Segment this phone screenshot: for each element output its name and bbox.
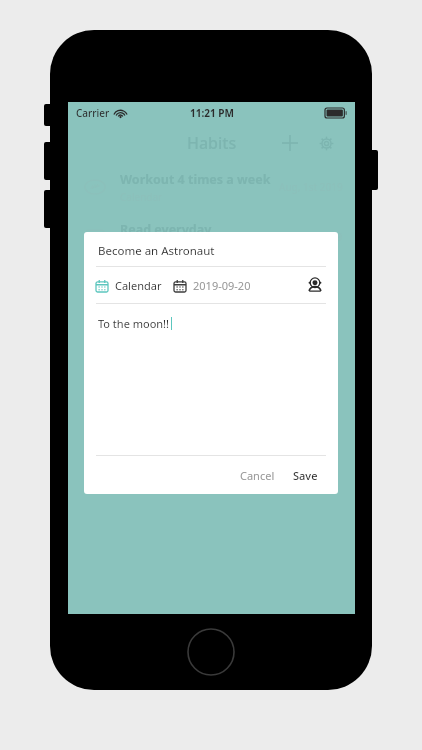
button[interactable]: Read everyday: [68, 212, 355, 262]
staticText: Sep, 12th 2019: [273, 230, 343, 244]
button[interactable]: 2019-09-20: [174, 278, 251, 293]
staticText: Read everyday: [120, 221, 212, 238]
staticText: Become an Astronaut: [98, 243, 215, 259]
button[interactable]: Settings: [311, 128, 341, 158]
button[interactable]: Save: [287, 464, 324, 487]
staticText: Notes: [120, 240, 148, 254]
staticText: Habits: [187, 132, 237, 154]
staticText: Save: [293, 468, 318, 483]
staticText: 2019-09-20: [193, 278, 251, 293]
staticText: 11:21 PM: [190, 106, 234, 120]
staticText: Workout 4 times a week: [120, 171, 271, 188]
staticText: Carrier: [76, 106, 110, 120]
button[interactable]: Astronaut: [304, 274, 326, 296]
staticText: To the moon!!: [98, 316, 170, 331]
button[interactable]: Cancel: [234, 464, 281, 487]
staticText: Calendar: [115, 278, 162, 293]
button[interactable]: Calendar: [96, 278, 162, 293]
staticText: Cancel: [240, 468, 275, 483]
